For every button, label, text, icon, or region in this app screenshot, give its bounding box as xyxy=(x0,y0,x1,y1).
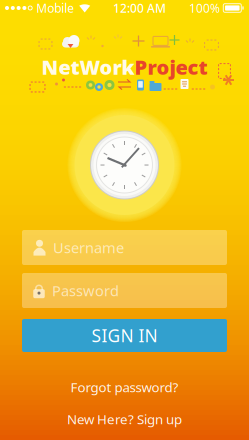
staticText: New Here? Sign up xyxy=(67,410,182,428)
staticText: SIGN IN xyxy=(91,324,157,347)
staticText: Mobile xyxy=(36,0,74,16)
button[interactable]: New Here? Sign up xyxy=(22,411,227,427)
staticText: Username xyxy=(53,238,124,257)
staticText: 12:00 AM xyxy=(113,0,166,16)
button[interactable]: Password xyxy=(22,273,227,308)
staticText: Forgot password? xyxy=(70,378,178,396)
staticText: 100% xyxy=(189,0,220,16)
button[interactable]: Forgot password? xyxy=(22,379,227,395)
button[interactable]: SIGN IN xyxy=(22,319,227,352)
staticText: NetWork xyxy=(41,54,134,80)
staticText: Password xyxy=(52,281,119,300)
button[interactable]: Username xyxy=(22,230,227,265)
staticText: Project xyxy=(134,54,207,80)
